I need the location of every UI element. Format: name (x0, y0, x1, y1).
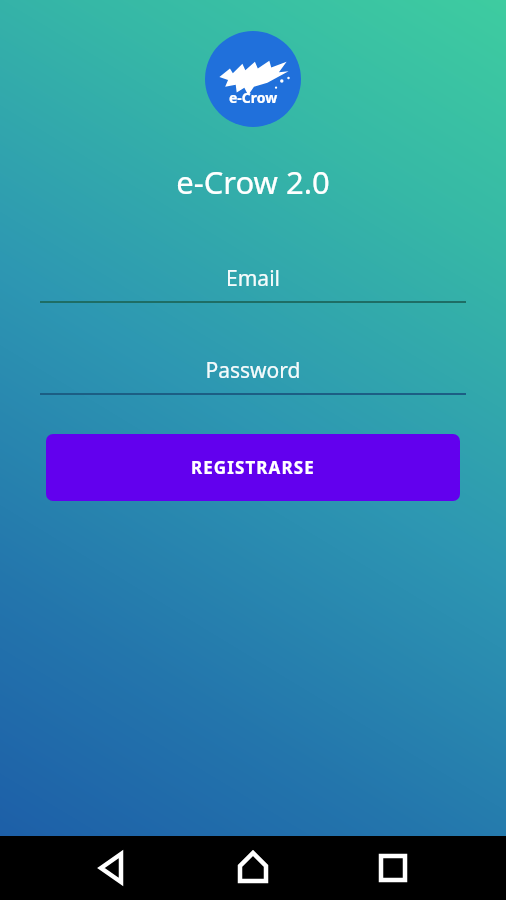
staticText: e-Crow (229, 88, 278, 107)
staticText: REGISTRARSE (191, 456, 315, 479)
staticText: e-Crow 2.0 (0, 161, 506, 203)
button[interactable]: Password (40, 356, 466, 395)
button[interactable]: Back (81, 836, 145, 900)
button[interactable]: Home (221, 836, 285, 900)
button[interactable]: Recent apps (361, 836, 425, 900)
staticText: Password (40, 356, 466, 385)
button[interactable]: e-Crow logo (205, 31, 301, 127)
staticText: Email (40, 264, 466, 293)
button[interactable]: Email (40, 264, 466, 303)
button[interactable]: REGISTRARSE (46, 434, 460, 501)
